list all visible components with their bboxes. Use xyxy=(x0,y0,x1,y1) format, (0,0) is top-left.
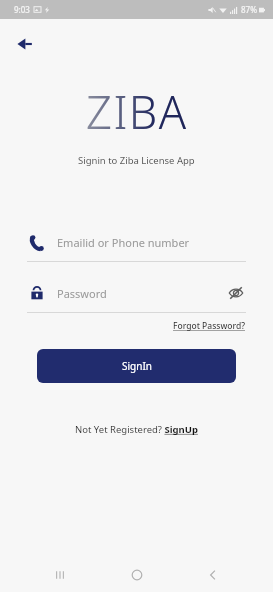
other: Phone xyxy=(27,232,47,252)
staticText: 87% xyxy=(241,4,257,15)
staticText: SignIn xyxy=(122,359,152,373)
button[interactable]: Back xyxy=(196,558,230,592)
staticText: Not Yet Registered? SignUp xyxy=(75,423,198,436)
button[interactable]: Lock xyxy=(27,278,246,308)
button[interactable]: Home xyxy=(120,558,154,592)
button[interactable]: SignIn xyxy=(37,349,236,383)
button[interactable]: Forgot Password? xyxy=(173,320,245,332)
other: Lock xyxy=(27,283,47,303)
staticText: ZIBA xyxy=(86,81,188,142)
button[interactable]: Phone xyxy=(27,227,246,257)
button[interactable]: Show password xyxy=(226,283,246,303)
staticText: Password xyxy=(57,286,107,301)
button[interactable]: Recents xyxy=(43,558,77,592)
staticText: Signin to Ziba License App xyxy=(78,154,195,167)
staticText: Emailid or Phone number xyxy=(57,235,190,250)
staticText: Forgot Password? xyxy=(173,320,245,332)
button[interactable]: Back xyxy=(10,29,40,59)
button[interactable]: Not Yet Registered? SignUp xyxy=(75,423,198,436)
staticText: 9:03 xyxy=(14,4,30,15)
